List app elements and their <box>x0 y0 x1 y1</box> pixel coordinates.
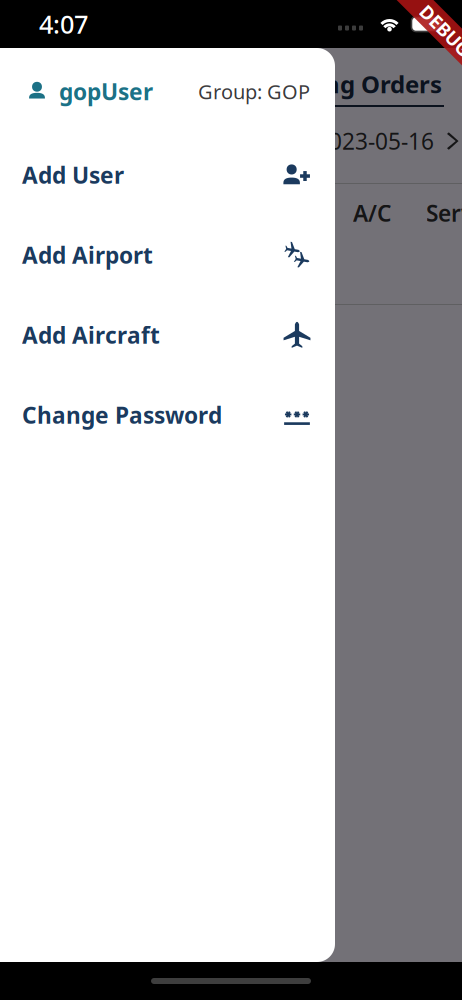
staticText: Group: GOP <box>198 78 310 105</box>
staticText: Service <box>426 198 462 228</box>
button[interactable]: Add User <box>0 135 335 215</box>
staticText: A/C <box>353 198 391 228</box>
staticText: Add Airport <box>22 240 153 270</box>
button[interactable]: Add Aircraft <box>0 295 335 375</box>
staticText: Outgoing Orders <box>242 68 442 100</box>
staticText: gopUser <box>59 76 153 106</box>
button[interactable]: Add Airport <box>0 215 335 295</box>
staticText: 4:07 <box>39 7 88 41</box>
staticText: Add Aircraft <box>22 320 160 350</box>
staticText: Change Password <box>22 400 222 430</box>
staticText: 2023-05-16 <box>316 126 434 156</box>
staticText: DEBUG <box>407 34 462 58</box>
staticText: Add User <box>22 160 124 190</box>
button[interactable]: gopUser <box>0 48 335 135</box>
button[interactable]: Change Password <box>0 375 335 455</box>
